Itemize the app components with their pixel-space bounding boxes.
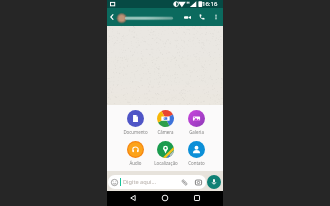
button[interactable]: Recents (189, 190, 205, 205)
button[interactable]: Video call (181, 8, 194, 26)
button[interactable] (114, 8, 192, 26)
staticText: Contato (188, 160, 205, 166)
staticText: Digite aqui... (123, 178, 157, 186)
button[interactable]: Áudio (120, 141, 151, 166)
staticText: Localização (154, 160, 178, 166)
button[interactable]: Emoji (108, 175, 206, 189)
button[interactable]: Contato (181, 141, 212, 166)
button[interactable]: Call (195, 8, 208, 26)
staticText: Documento (123, 129, 148, 135)
button[interactable]: Back (107, 8, 116, 26)
button[interactable]: More options (210, 8, 221, 26)
other: Emoji (111, 179, 118, 186)
button[interactable]: Home (157, 190, 173, 205)
button[interactable]: Galeria (181, 110, 212, 135)
button[interactable]: Record voice message (207, 175, 221, 189)
staticText: Galeria (189, 129, 204, 135)
button[interactable]: Câmera (150, 110, 181, 135)
button[interactable]: Attach (178, 175, 190, 189)
staticText: Áudio (129, 160, 142, 166)
button[interactable]: Back (125, 190, 141, 205)
staticText: 16:16 (202, 0, 218, 8)
staticText: Câmera (157, 129, 174, 135)
button[interactable]: Camera (192, 175, 204, 189)
button[interactable]: Documento (120, 110, 151, 135)
button[interactable]: Localização (150, 141, 181, 166)
